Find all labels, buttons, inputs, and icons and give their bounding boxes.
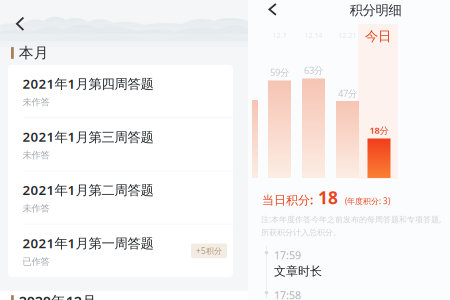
- staticText: 18: [313, 186, 343, 209]
- button[interactable]: 2021年1月第一周答题: [8, 224, 233, 277]
- staticText: 2021年1月第二周答题: [22, 181, 153, 199]
- staticText: 未作答: [22, 96, 49, 108]
- staticText: 已作答: [22, 256, 49, 267]
- staticText: 本月: [19, 44, 49, 62]
- staticText: 注:本年度作答今年之前发布的每周答题和专项答题,: [261, 214, 441, 225]
- staticText: 未作答: [22, 149, 49, 161]
- staticText: 今日: [365, 28, 391, 44]
- staticText: 2021年1月第一周答题: [22, 234, 153, 252]
- staticText: 所获积分计入总积分。: [261, 228, 341, 237]
- staticText: 12.7: [272, 31, 286, 40]
- staticText: 2021年1月第四周答题: [22, 75, 153, 92]
- button[interactable]: Back: [0, 0, 248, 31]
- button[interactable]: 2021年1月第二周答题: [8, 171, 233, 224]
- staticText: 47分: [338, 87, 357, 99]
- staticText: 17:59: [274, 248, 301, 262]
- staticText: 当日积分:: [262, 192, 313, 208]
- staticText: 2020年12月: [19, 291, 97, 300]
- button[interactable]: Back: [248, 0, 287, 24]
- staticText: 63分: [304, 64, 323, 76]
- staticText: (年度积分: 3): [343, 196, 390, 206]
- staticText: 17:58: [274, 288, 301, 300]
- staticText: +5积分: [196, 245, 222, 256]
- staticText: 未作答: [22, 203, 49, 214]
- button[interactable]: 2021年1月第三周答题: [8, 118, 233, 171]
- staticText: 59分: [270, 66, 289, 78]
- staticText: 文章时长: [274, 264, 322, 279]
- button[interactable]: 2021年1月第四周答题: [8, 65, 233, 117]
- staticText: 12.14: [304, 31, 322, 40]
- staticText: 2021年1月第三周答题: [22, 128, 153, 145]
- staticText: 12.21: [338, 31, 356, 40]
- staticText: 积分明细: [349, 2, 401, 18]
- staticText: 18分: [369, 124, 388, 136]
